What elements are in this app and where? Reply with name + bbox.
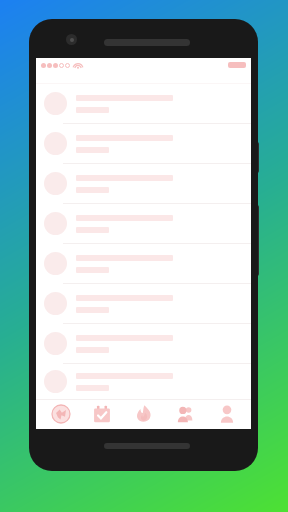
button[interactable]: Discover [44,399,78,429]
button[interactable]: Trending [127,399,161,429]
button[interactable] [36,124,251,164]
button[interactable] [36,244,251,284]
button[interactable] [36,84,251,124]
button[interactable] [36,324,251,364]
button[interactable]: Events [85,399,119,429]
button[interactable] [36,164,251,204]
button[interactable]: Profile [210,399,244,429]
button[interactable] [36,284,251,324]
button[interactable]: Friends [168,399,202,429]
button[interactable] [36,204,251,244]
button[interactable] [36,364,251,399]
